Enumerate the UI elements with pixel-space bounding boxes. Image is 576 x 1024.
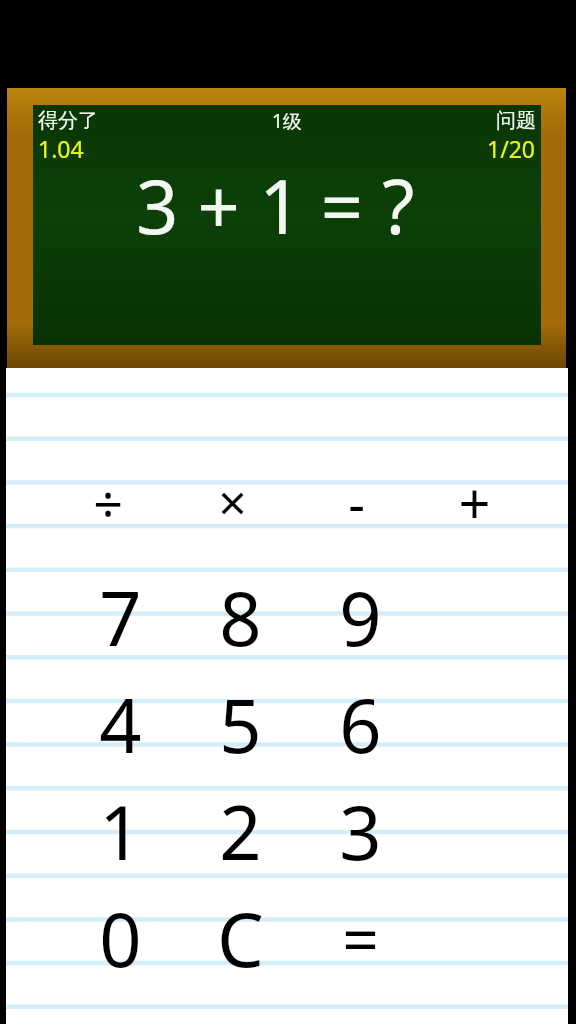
- button[interactable]: -: [314, 460, 398, 544]
- staticText: 1/20: [487, 133, 536, 164]
- staticText: +: [458, 464, 491, 540]
- staticText: =: [342, 895, 379, 982]
- button[interactable]: C: [180, 885, 300, 992]
- staticText: 1.04: [38, 133, 84, 164]
- button[interactable]: 7: [60, 564, 180, 671]
- staticText: 问题: [496, 108, 536, 133]
- staticText: 2: [219, 781, 262, 882]
- staticText: 得分了: [38, 108, 98, 133]
- button[interactable]: 1: [60, 778, 180, 885]
- button[interactable]: =: [300, 885, 420, 992]
- staticText: C: [217, 888, 264, 989]
- staticText: ÷: [93, 467, 123, 538]
- button[interactable]: ÷: [66, 460, 150, 544]
- button[interactable]: ×: [190, 460, 274, 544]
- staticText: 8: [219, 567, 262, 668]
- button[interactable]: 0: [60, 885, 180, 992]
- staticText: 6: [339, 674, 382, 775]
- staticText: ×: [218, 468, 247, 536]
- button[interactable]: 3: [300, 778, 420, 885]
- staticText: 4: [99, 674, 142, 775]
- staticText: 1级: [272, 108, 302, 134]
- button[interactable]: 5: [180, 671, 300, 778]
- staticText: 3 + 1 = ?: [136, 155, 415, 256]
- staticText: 1: [99, 781, 142, 882]
- staticText: 9: [339, 567, 382, 668]
- staticText: 0: [99, 888, 142, 989]
- button[interactable]: 9: [300, 564, 420, 671]
- staticText: 5: [219, 674, 262, 775]
- button[interactable]: 4: [60, 671, 180, 778]
- staticText: 3: [339, 781, 382, 882]
- button[interactable]: +: [432, 460, 516, 544]
- staticText: 7: [99, 567, 142, 668]
- button[interactable]: 2: [180, 778, 300, 885]
- staticText: -: [348, 467, 365, 538]
- button[interactable]: 8: [180, 564, 300, 671]
- button[interactable]: 6: [300, 671, 420, 778]
